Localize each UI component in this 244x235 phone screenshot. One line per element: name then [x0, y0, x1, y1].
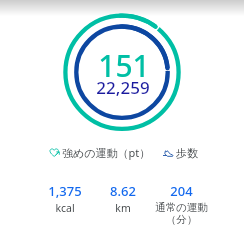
button[interactable]: Intensity minutes [49, 145, 151, 160]
button[interactable]: 204 [152, 182, 210, 226]
button[interactable]: 8.62 [94, 182, 152, 215]
staticText: 22,259 [96, 76, 150, 99]
staticText: kcal [55, 201, 75, 215]
staticText: 通常の運動 （分） [155, 201, 208, 226]
other: Intensity minutes [49, 147, 60, 158]
staticText: km [115, 201, 131, 215]
button[interactable]: 1,375 [36, 182, 94, 215]
staticText: 歩数 [176, 146, 198, 160]
staticText: 強めの運動（pt） [62, 145, 151, 160]
button[interactable]: Steps [163, 146, 198, 160]
staticText: 151 [98, 45, 150, 86]
staticText: 1,375 [48, 182, 82, 200]
staticText: 204 [170, 182, 193, 200]
other: Steps [163, 148, 174, 159]
staticText: 8.62 [110, 182, 136, 200]
